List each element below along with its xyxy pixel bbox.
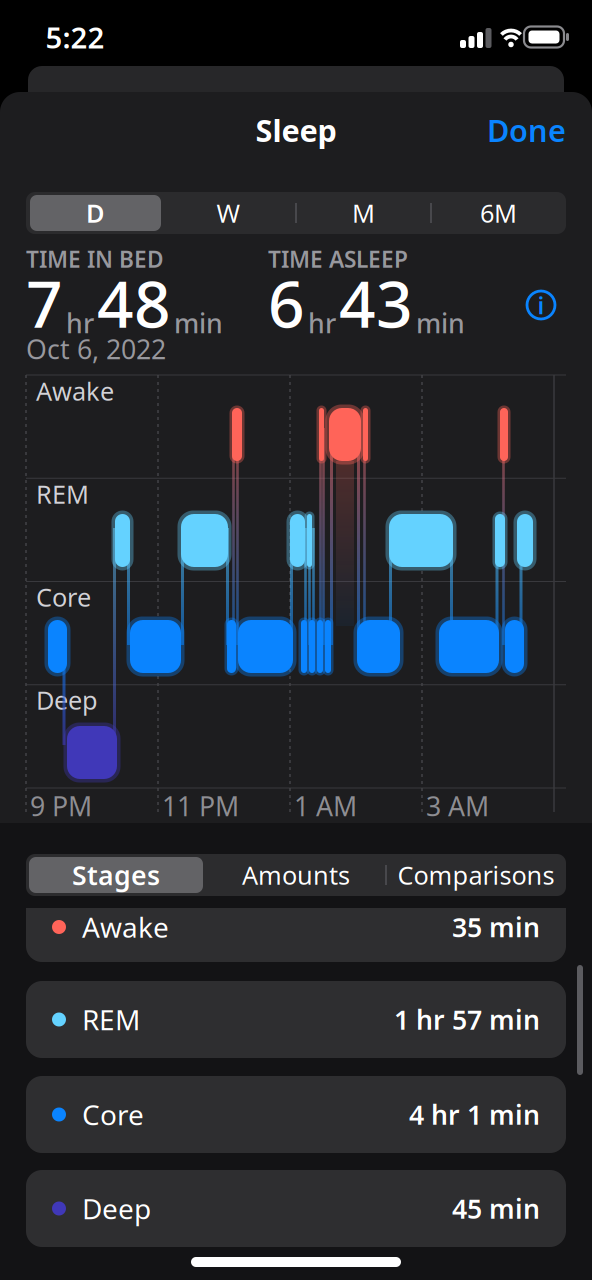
staticText: min <box>416 305 465 340</box>
staticText: Stages <box>72 857 160 893</box>
staticText: Oct 6, 2022 <box>26 331 166 367</box>
staticText: 4 hr 1 min <box>409 1097 540 1132</box>
button[interactable]: Stages <box>27 854 205 896</box>
staticText: hr <box>308 305 336 340</box>
staticText: min <box>174 305 223 340</box>
staticText: 48 <box>97 260 171 345</box>
button[interactable]: Amounts <box>207 854 385 896</box>
staticText: 5:22 <box>45 17 104 56</box>
staticText: M <box>352 196 375 230</box>
staticText: Core <box>82 1096 144 1133</box>
staticText: 45 min <box>452 1191 540 1226</box>
button[interactable]: 6M <box>431 192 566 234</box>
staticText: 6M <box>480 196 517 230</box>
staticText: REM <box>82 1001 140 1038</box>
staticText: REM <box>36 477 89 511</box>
staticText: TIME IN BED <box>26 244 164 274</box>
staticText: 1 AM <box>294 788 357 824</box>
staticText: Amounts <box>242 858 350 892</box>
staticText: Core <box>36 580 91 614</box>
staticText: 6 <box>268 260 305 345</box>
staticText: i <box>537 289 544 321</box>
button[interactable]: About Sleep Stages <box>524 288 558 322</box>
staticText: Sleep <box>255 110 336 150</box>
staticText: 11 PM <box>162 788 239 824</box>
button[interactable]: Done <box>487 110 566 150</box>
button[interactable]: Comparisons <box>387 854 565 896</box>
staticText: TIME ASLEEP <box>268 244 408 274</box>
staticText: Awake <box>36 374 114 408</box>
staticText: W <box>216 196 240 230</box>
staticText: Comparisons <box>397 858 554 892</box>
staticText: Deep <box>36 683 98 717</box>
button[interactable]: D <box>28 192 163 234</box>
staticText: 43 <box>339 260 413 345</box>
button[interactable]: M <box>296 192 431 234</box>
staticText: Deep <box>82 1190 151 1227</box>
staticText: 1 hr 57 min <box>394 1002 540 1037</box>
staticText: 3 AM <box>426 788 489 824</box>
button[interactable]: W <box>161 192 296 234</box>
staticText: 9 PM <box>30 788 92 824</box>
staticText: 7 <box>26 260 63 345</box>
staticText: 35 min <box>452 909 540 945</box>
staticText: Done <box>487 110 566 150</box>
staticText: D <box>86 196 105 230</box>
staticText: Awake <box>82 908 169 946</box>
staticText: hr <box>66 305 94 340</box>
